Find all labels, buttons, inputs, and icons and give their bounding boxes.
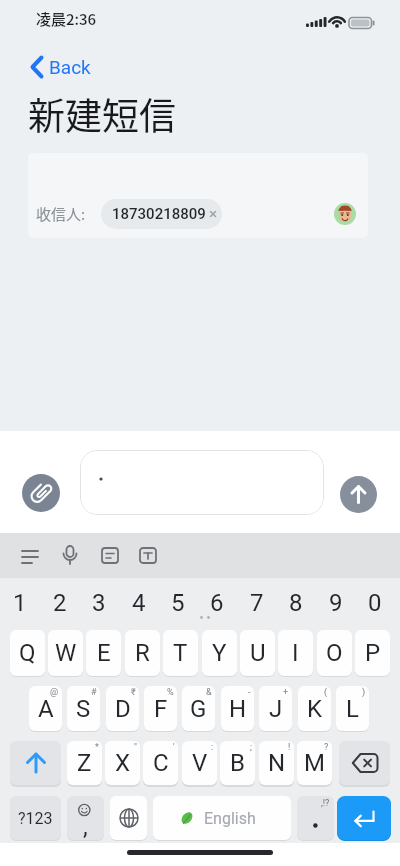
button[interactable]: : bbox=[182, 741, 217, 785]
button[interactable]: Back bbox=[26, 52, 116, 82]
staticText: W bbox=[55, 639, 77, 667]
button[interactable]: W bbox=[48, 630, 83, 676]
staticText: Q bbox=[19, 639, 36, 667]
button[interactable]: @ bbox=[29, 686, 62, 731]
staticText: V bbox=[192, 749, 208, 777]
staticText: H bbox=[229, 695, 247, 723]
button[interactable]: 7 bbox=[237, 588, 276, 617]
button[interactable]: 6 bbox=[197, 588, 236, 617]
staticText: X bbox=[115, 749, 131, 777]
button[interactable]: # bbox=[67, 686, 100, 731]
button[interactable]: + bbox=[259, 686, 292, 731]
staticText: J bbox=[269, 695, 283, 723]
button[interactable]: , bbox=[67, 796, 104, 840]
button[interactable]: Q bbox=[10, 630, 45, 676]
staticText: 3 bbox=[92, 589, 106, 617]
button[interactable]: & bbox=[182, 686, 215, 731]
staticText: 8 bbox=[289, 589, 303, 617]
staticText: English bbox=[204, 809, 256, 828]
staticText: ' bbox=[173, 742, 175, 753]
button[interactable]: 3 bbox=[79, 588, 118, 617]
staticText: 6 bbox=[210, 589, 224, 617]
staticText: : bbox=[211, 742, 214, 753]
staticText: - bbox=[248, 687, 251, 698]
staticText: 1 bbox=[13, 589, 27, 617]
staticText: S bbox=[76, 695, 91, 723]
staticText: + bbox=[283, 687, 289, 698]
button[interactable] bbox=[22, 474, 60, 512]
button[interactable]: - bbox=[221, 686, 254, 731]
button[interactable]: U bbox=[240, 630, 275, 676]
button[interactable] bbox=[339, 741, 390, 785]
staticText: C bbox=[153, 749, 169, 777]
button[interactable]: O bbox=[317, 630, 352, 676]
staticText: E bbox=[97, 639, 111, 667]
button[interactable]: Y bbox=[202, 630, 237, 676]
button[interactable]: " bbox=[105, 741, 140, 785]
button[interactable]: 18730218809 bbox=[101, 199, 222, 229]
button[interactable]: 8 bbox=[276, 588, 315, 617]
staticText: 2 bbox=[53, 589, 67, 617]
staticText: U bbox=[250, 639, 266, 667]
button[interactable]: 5 bbox=[158, 588, 197, 617]
button[interactable]: T bbox=[163, 630, 198, 676]
button[interactable]: English bbox=[153, 796, 291, 840]
button[interactable]: ( bbox=[298, 686, 331, 731]
staticText: ₹ bbox=[131, 687, 136, 698]
button[interactable]: 2 bbox=[40, 588, 79, 617]
staticText: * bbox=[95, 742, 99, 753]
button[interactable]: 1 bbox=[0, 588, 39, 617]
staticText: # bbox=[91, 687, 97, 698]
button[interactable] bbox=[110, 796, 147, 840]
staticText: N bbox=[268, 749, 286, 777]
button[interactable]: % bbox=[144, 686, 177, 731]
button[interactable]: ) bbox=[336, 686, 369, 731]
staticText: ) bbox=[362, 687, 366, 698]
staticText: 7 bbox=[250, 589, 264, 617]
staticText: ; bbox=[250, 742, 252, 753]
button[interactable]: ? bbox=[297, 741, 332, 785]
button[interactable]: 9 bbox=[316, 588, 355, 617]
staticText: % bbox=[167, 687, 174, 698]
staticText: Back bbox=[49, 56, 91, 78]
staticText: ? bbox=[324, 742, 329, 753]
button[interactable]: 4 bbox=[119, 588, 158, 617]
button[interactable]: ! bbox=[259, 741, 294, 785]
staticText: Z bbox=[77, 749, 92, 777]
button[interactable]: ; bbox=[220, 741, 255, 785]
button[interactable]: ?123 bbox=[10, 796, 61, 840]
staticText: " bbox=[134, 742, 137, 753]
staticText: G bbox=[190, 695, 207, 723]
button[interactable]: E bbox=[86, 630, 121, 676]
staticText: 9 bbox=[329, 589, 343, 617]
staticText: ( bbox=[324, 687, 328, 698]
button[interactable]: ₹ bbox=[106, 686, 139, 731]
button[interactable]: * bbox=[67, 741, 102, 785]
button[interactable]: ' bbox=[143, 741, 178, 785]
button[interactable]: P bbox=[355, 630, 390, 676]
staticText: 5 bbox=[171, 589, 185, 617]
button[interactable]: I bbox=[278, 630, 313, 676]
button[interactable]: R bbox=[125, 630, 160, 676]
staticText: T bbox=[173, 639, 188, 667]
staticText: 18730218809 bbox=[112, 205, 206, 223]
staticText: ,!? bbox=[321, 798, 330, 809]
staticText: M bbox=[304, 749, 325, 777]
button[interactable] bbox=[337, 796, 391, 840]
staticText: ! bbox=[288, 742, 291, 753]
staticText: 0 bbox=[368, 589, 382, 617]
button[interactable]: 0 bbox=[355, 588, 394, 617]
button[interactable] bbox=[340, 476, 377, 513]
button[interactable] bbox=[10, 741, 61, 785]
staticText: 4 bbox=[132, 589, 146, 617]
staticText: , bbox=[83, 813, 88, 840]
staticText: A bbox=[38, 695, 54, 723]
staticText: D bbox=[115, 695, 131, 723]
staticText: @ bbox=[50, 687, 59, 698]
staticText: Y bbox=[212, 639, 227, 667]
staticText: & bbox=[206, 687, 212, 698]
button[interactable] bbox=[80, 450, 324, 515]
staticText: B bbox=[230, 749, 245, 777]
button[interactable]: ,!? bbox=[297, 796, 334, 840]
staticText: O bbox=[326, 639, 343, 667]
